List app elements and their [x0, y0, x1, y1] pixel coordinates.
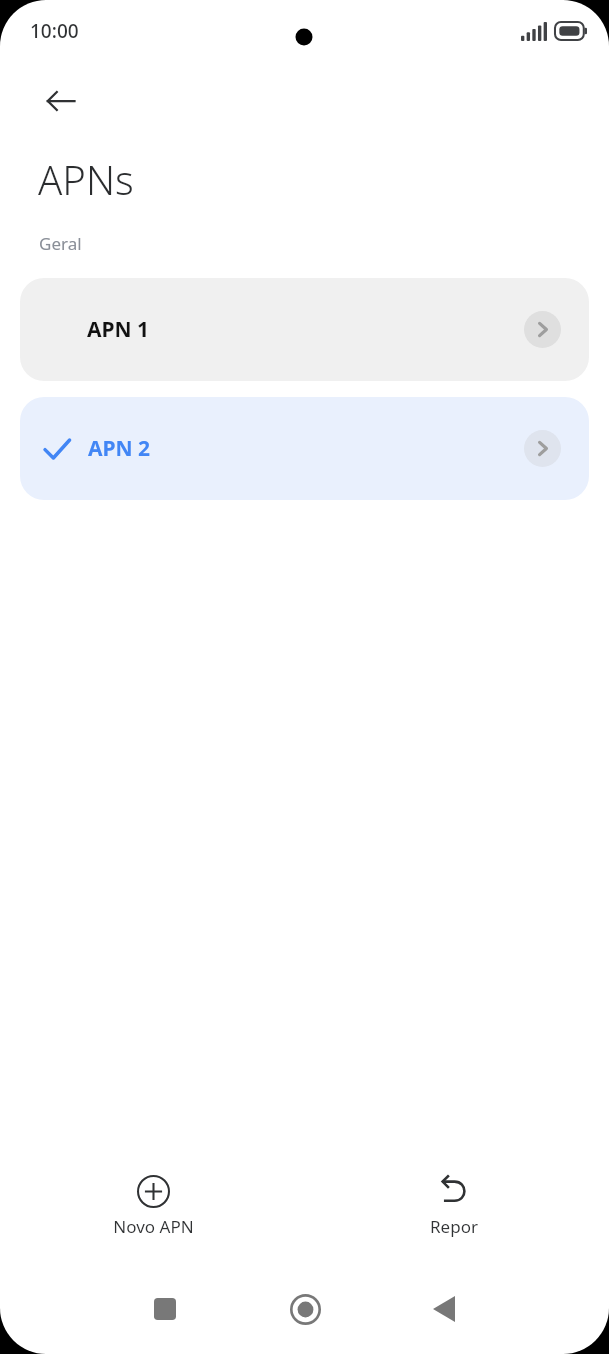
button[interactable]: Novo APN [93, 1175, 213, 1238]
staticText: Novo APN [113, 1215, 194, 1238]
staticText: 10:00 [30, 18, 79, 44]
staticText: Repor [430, 1215, 478, 1238]
button[interactable]: Home [277, 1286, 333, 1332]
staticText: APN 1 [87, 315, 150, 344]
button[interactable]: Repor [399, 1175, 509, 1238]
button[interactable]: Open APN 2 details [524, 430, 561, 467]
button[interactable]: Back [416, 1286, 472, 1332]
button[interactable]: Open APN 1 details [524, 311, 561, 348]
button[interactable]: Recent apps [137, 1286, 193, 1332]
staticText: Geral [39, 232, 82, 255]
button[interactable]: Back [33, 73, 89, 129]
button[interactable]: APN 2 [20, 397, 589, 500]
staticText: APN 2 [88, 434, 151, 463]
staticText: APNs [38, 152, 134, 206]
button[interactable]: APN 1 [20, 278, 589, 381]
